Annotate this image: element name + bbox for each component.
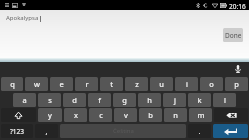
button[interactable]: , [35,124,58,138]
button[interactable]: f [88,93,111,107]
button[interactable]: r [75,77,98,91]
button[interactable]: Enter [213,124,248,138]
button[interactable]: l [213,93,236,107]
staticText: d [72,95,77,105]
button[interactable]: Done [223,28,243,42]
button[interactable]: m [189,108,212,122]
button[interactable]: v [114,108,137,122]
staticText: v [124,110,128,120]
button[interactable]: i [175,77,198,91]
button[interactable]: x [64,108,87,122]
button[interactable]: g [113,93,136,107]
staticText: Apokalypsa [6,14,39,22]
button[interactable]: Shift [1,108,36,122]
button[interactable]: . [188,124,211,138]
button[interactable]: Backspace [214,108,248,122]
staticText: r [85,79,89,89]
staticText: f [98,95,101,105]
button[interactable]: s [38,93,61,107]
staticText: q [10,79,15,89]
staticText: , [45,126,48,136]
staticText: g [122,95,127,105]
button[interactable]: n [164,108,187,122]
staticText: t [110,79,113,89]
button[interactable]: q [1,77,23,91]
staticText: k [197,95,202,105]
staticText: n [173,110,178,120]
button[interactable]: u [150,77,173,91]
staticText: ?123 [10,127,24,136]
button[interactable]: e [50,77,73,91]
staticText: o [209,79,214,89]
button[interactable]: b [139,108,162,122]
button[interactable]: c [89,108,112,122]
staticText: l [224,95,226,105]
button[interactable]: h [138,93,161,107]
staticText: m [197,110,205,120]
staticText: . [198,126,201,136]
button[interactable]: w [25,77,48,91]
staticText: s [48,95,52,105]
staticText: a [22,95,27,105]
staticText: u [159,79,164,89]
button[interactable]: a [13,93,36,107]
staticText: p [234,79,239,89]
staticText: c [99,110,103,120]
button[interactable]: y [38,108,62,122]
staticText: y [48,110,52,120]
button[interactable]: t [100,77,123,91]
staticText: e [59,79,64,89]
button[interactable]: Voice input [232,63,243,74]
staticText: x [74,110,78,120]
staticText: Done [225,31,242,40]
staticText: z [135,79,139,89]
button[interactable]: ?123 [1,124,33,138]
staticText: b [148,110,153,120]
button[interactable]: z [125,77,148,91]
staticText: 20:16 [229,2,246,11]
staticText: j [174,95,176,105]
staticText: i [186,79,188,89]
button[interactable]: k [188,93,211,107]
button[interactable]: j [163,93,186,107]
button[interactable]: p [225,77,248,91]
staticText: w [34,79,40,89]
staticText: h [147,95,152,105]
button[interactable]: o [200,77,223,91]
staticText: Čeština [113,127,134,135]
button[interactable]: d [63,93,86,107]
